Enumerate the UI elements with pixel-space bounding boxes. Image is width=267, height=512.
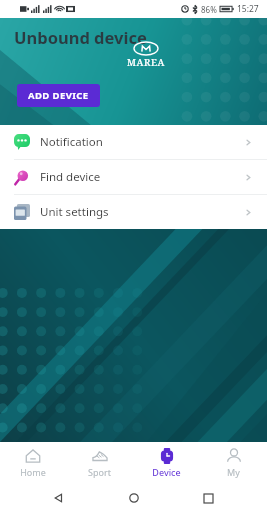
staticText: Unbound device: [14, 26, 147, 48]
button[interactable]: Home: [0, 442, 66, 484]
staticText: 15:27: [237, 3, 259, 15]
button[interactable]: Sport: [66, 442, 133, 484]
staticText: 86%: [201, 4, 217, 15]
staticText: Notification: [40, 134, 244, 150]
button[interactable]: My: [200, 442, 267, 484]
staticText: ADD DEVICE: [28, 89, 89, 102]
staticText: Device: [152, 466, 181, 478]
staticText: Unit settings: [40, 204, 244, 220]
staticText: Home: [20, 466, 46, 478]
button[interactable]: Home: [119, 484, 149, 512]
button[interactable]: Notification: [0, 125, 267, 159]
button[interactable]: ADD DEVICE: [17, 84, 100, 107]
button[interactable]: Recents: [193, 484, 223, 512]
staticText: Sport: [88, 466, 111, 478]
staticText: Find device: [40, 169, 244, 185]
button[interactable]: Back: [44, 484, 74, 512]
button[interactable]: Unit settings: [0, 195, 267, 229]
staticText: My: [227, 466, 240, 478]
button[interactable]: Find device: [0, 160, 267, 194]
staticText: MAREA: [127, 56, 165, 69]
button[interactable]: Device: [133, 442, 200, 484]
